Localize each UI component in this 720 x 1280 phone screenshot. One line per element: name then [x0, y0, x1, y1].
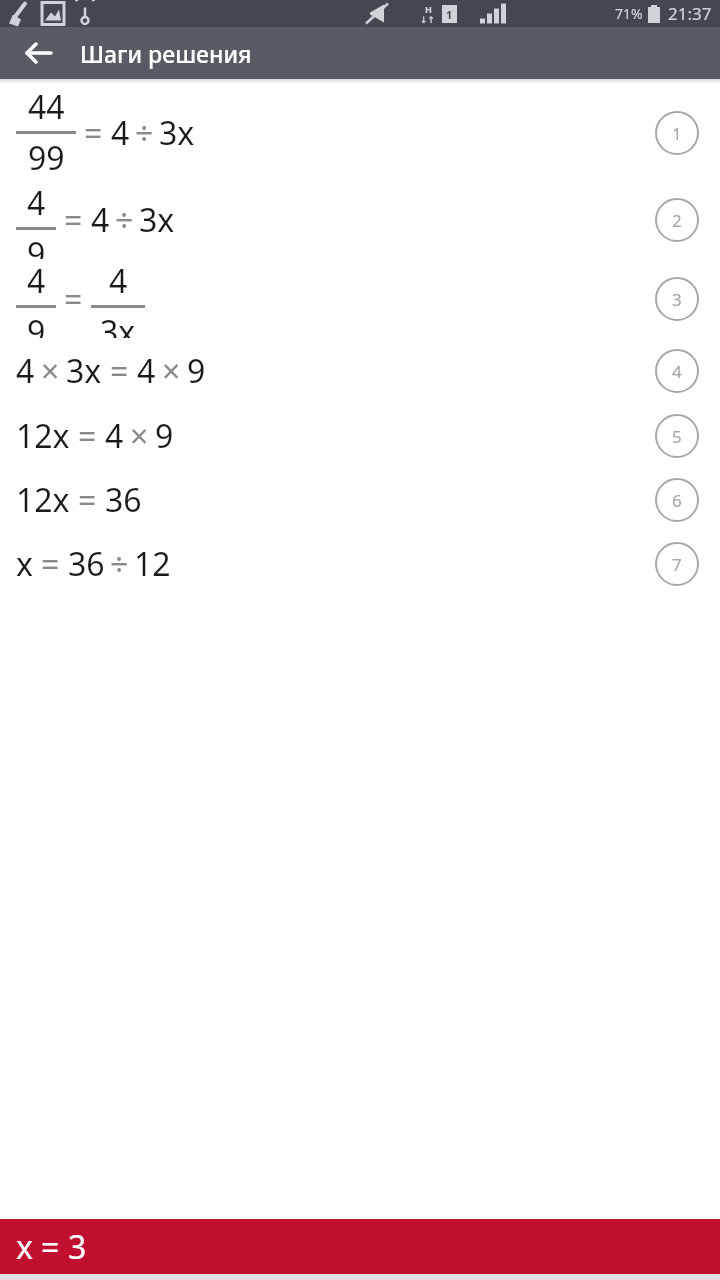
staticText: 21:37: [668, 2, 712, 25]
button[interactable]: x: [0, 532, 720, 596]
staticText: 4: [27, 181, 46, 225]
staticText: 7: [672, 553, 682, 576]
button[interactable]: Step 4: [655, 349, 699, 393]
staticText: 4: [109, 259, 128, 303]
button[interactable]: Step 2: [655, 198, 699, 242]
staticText: 9: [187, 349, 206, 393]
staticText: 4: [16, 349, 35, 393]
staticText: 36: [105, 478, 142, 522]
staticText: x: [16, 542, 33, 586]
staticText: =: [64, 198, 83, 242]
staticText: x: [16, 1225, 33, 1269]
staticText: 99: [28, 136, 65, 180]
button[interactable]: 4: [0, 259, 720, 338]
staticText: 9: [27, 310, 46, 338]
staticText: 4: [672, 360, 682, 383]
staticText: H: [425, 3, 432, 15]
button[interactable]: Step 3: [655, 277, 699, 321]
staticText: 3x: [159, 111, 195, 155]
staticText: 5: [672, 425, 682, 448]
staticText: ×: [162, 349, 181, 393]
staticText: =: [78, 478, 97, 522]
staticText: 4: [137, 349, 156, 393]
button[interactable]: 44: [0, 84, 720, 181]
staticText: =: [41, 542, 60, 586]
button[interactable]: x: [0, 1219, 720, 1274]
staticText: 9: [155, 414, 174, 458]
staticText: ↓↑: [420, 15, 436, 25]
staticText: 4: [105, 414, 124, 458]
button[interactable]: Step 7: [655, 542, 699, 586]
button[interactable]: 4: [0, 338, 720, 404]
staticText: 12x: [16, 478, 70, 522]
staticText: =: [41, 1225, 60, 1269]
staticText: =: [84, 111, 103, 155]
staticText: ×: [41, 349, 60, 393]
staticText: 2: [672, 209, 682, 232]
staticText: 6: [672, 489, 682, 512]
button[interactable]: Step 6: [655, 478, 699, 522]
staticText: 44: [28, 85, 65, 129]
staticText: 36: [68, 542, 105, 586]
button[interactable]: 4: [0, 181, 720, 259]
staticText: 1: [446, 7, 453, 22]
staticText: 3x: [100, 310, 136, 338]
button[interactable]: Back: [18, 33, 58, 73]
staticText: ÷: [115, 198, 134, 242]
button[interactable]: Step 1: [655, 111, 699, 155]
button[interactable]: Step 5: [655, 414, 699, 458]
staticText: 9: [27, 232, 46, 259]
staticText: 3: [68, 1225, 87, 1269]
staticText: 4: [91, 198, 110, 242]
staticText: 3: [672, 288, 682, 311]
staticText: =: [78, 414, 97, 458]
staticText: 12x: [16, 414, 70, 458]
staticText: ÷: [135, 111, 154, 155]
button[interactable]: 12x: [0, 468, 720, 532]
staticText: ÷: [110, 542, 129, 586]
staticText: 71%: [615, 4, 643, 23]
staticText: 3x: [66, 349, 102, 393]
staticText: =: [64, 277, 83, 321]
staticText: =: [110, 349, 129, 393]
button[interactable]: 12x: [0, 404, 720, 468]
staticText: Шаги решения: [80, 38, 252, 69]
staticText: 3x: [139, 198, 175, 242]
staticText: 1: [672, 122, 682, 145]
staticText: 4: [27, 259, 46, 303]
staticText: 4: [111, 111, 130, 155]
staticText: 12: [134, 542, 171, 586]
staticText: ×: [130, 414, 149, 458]
